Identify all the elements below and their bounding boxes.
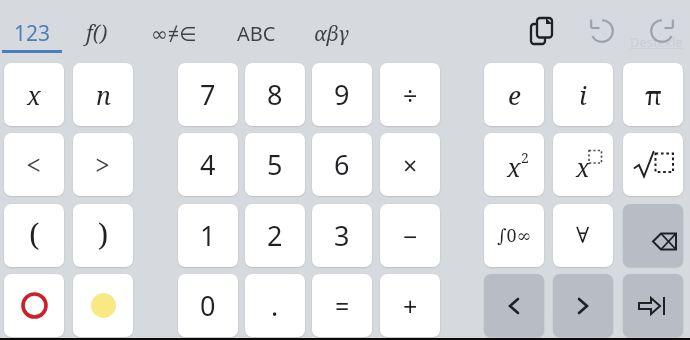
button[interactable] bbox=[644, 13, 680, 49]
button[interactable]: . bbox=[245, 274, 305, 337]
button[interactable] bbox=[4, 274, 64, 337]
button[interactable]: i bbox=[553, 63, 613, 126]
button[interactable]: > bbox=[73, 133, 133, 196]
button[interactable]: x bbox=[484, 133, 544, 196]
staticText: 7 bbox=[200, 76, 216, 113]
button[interactable]: + bbox=[380, 274, 440, 337]
button[interactable]: ) bbox=[73, 204, 133, 267]
staticText: ∀ bbox=[576, 223, 590, 249]
button[interactable]: ∞≠∈ bbox=[141, 10, 207, 56]
button[interactable] bbox=[529, 16, 557, 44]
staticText: i bbox=[579, 77, 587, 112]
button[interactable]: 7 bbox=[178, 63, 238, 126]
button[interactable]: 9 bbox=[312, 63, 372, 126]
button[interactable] bbox=[73, 274, 133, 337]
staticText: f() bbox=[86, 19, 108, 48]
button[interactable]: π bbox=[623, 63, 683, 126]
button[interactable]: 2 bbox=[245, 204, 305, 267]
staticText: 2 bbox=[521, 148, 529, 167]
button[interactable]: ÷ bbox=[380, 63, 440, 126]
button[interactable]: f() bbox=[64, 10, 130, 56]
staticText: x bbox=[507, 150, 521, 184]
staticText: × bbox=[403, 148, 418, 182]
button[interactable] bbox=[623, 204, 683, 267]
staticText: ( bbox=[29, 214, 40, 255]
button[interactable]: 0 bbox=[178, 274, 238, 337]
staticText: 4 bbox=[200, 146, 216, 183]
staticText: 8 bbox=[267, 76, 283, 113]
button[interactable]: 1 bbox=[178, 204, 238, 267]
button[interactable]: 4 bbox=[178, 133, 238, 196]
staticText: 5 bbox=[267, 146, 283, 183]
staticText: e bbox=[508, 77, 521, 112]
staticText: ABC bbox=[237, 20, 276, 47]
staticText: > bbox=[95, 146, 111, 183]
staticText: π bbox=[645, 77, 662, 112]
button[interactable]: αβγ bbox=[298, 10, 364, 56]
staticText: x bbox=[27, 78, 41, 112]
button[interactable] bbox=[584, 13, 620, 49]
button[interactable]: 6 bbox=[312, 133, 372, 196]
staticText: ∞≠∈ bbox=[151, 20, 197, 47]
staticText: Destekle bbox=[630, 33, 683, 51]
button[interactable]: = bbox=[312, 274, 372, 337]
button[interactable]: x bbox=[553, 133, 613, 196]
staticText: 2 bbox=[267, 217, 283, 254]
button[interactable]: ( bbox=[4, 204, 64, 267]
staticText: 0 bbox=[200, 287, 216, 324]
button[interactable]: ∫0∞ bbox=[484, 204, 544, 267]
staticText: n bbox=[96, 78, 111, 112]
button[interactable] bbox=[623, 133, 683, 196]
button[interactable]: 5 bbox=[245, 133, 305, 196]
staticText: x bbox=[576, 150, 590, 184]
staticText: 1 bbox=[200, 217, 216, 254]
button[interactable]: 123 bbox=[0, 10, 65, 56]
button[interactable]: − bbox=[380, 204, 440, 267]
button[interactable]: < bbox=[4, 133, 64, 196]
button[interactable]: ∀ bbox=[553, 204, 613, 267]
button[interactable]: 3 bbox=[312, 204, 372, 267]
staticText: ) bbox=[98, 214, 109, 255]
staticText: . bbox=[271, 287, 279, 324]
button[interactable]: ABC bbox=[223, 10, 289, 56]
staticText: 123 bbox=[14, 19, 51, 48]
staticText: = bbox=[335, 289, 350, 323]
staticText: αβγ bbox=[314, 20, 349, 47]
button[interactable]: × bbox=[380, 133, 440, 196]
button[interactable]: x bbox=[4, 63, 64, 126]
staticText: 6 bbox=[334, 146, 350, 183]
staticText: 9 bbox=[334, 76, 350, 113]
staticText: ∫0∞ bbox=[497, 223, 532, 248]
staticText: ÷ bbox=[403, 78, 418, 112]
staticText: − bbox=[403, 219, 418, 253]
staticText: 3 bbox=[334, 217, 350, 254]
button[interactable] bbox=[553, 274, 613, 337]
button[interactable] bbox=[623, 274, 683, 337]
button[interactable]: e bbox=[484, 63, 544, 126]
staticText: + bbox=[403, 289, 418, 323]
button[interactable] bbox=[484, 274, 544, 337]
button[interactable]: n bbox=[73, 63, 133, 126]
button[interactable]: 8 bbox=[245, 63, 305, 126]
staticText: < bbox=[26, 146, 42, 183]
